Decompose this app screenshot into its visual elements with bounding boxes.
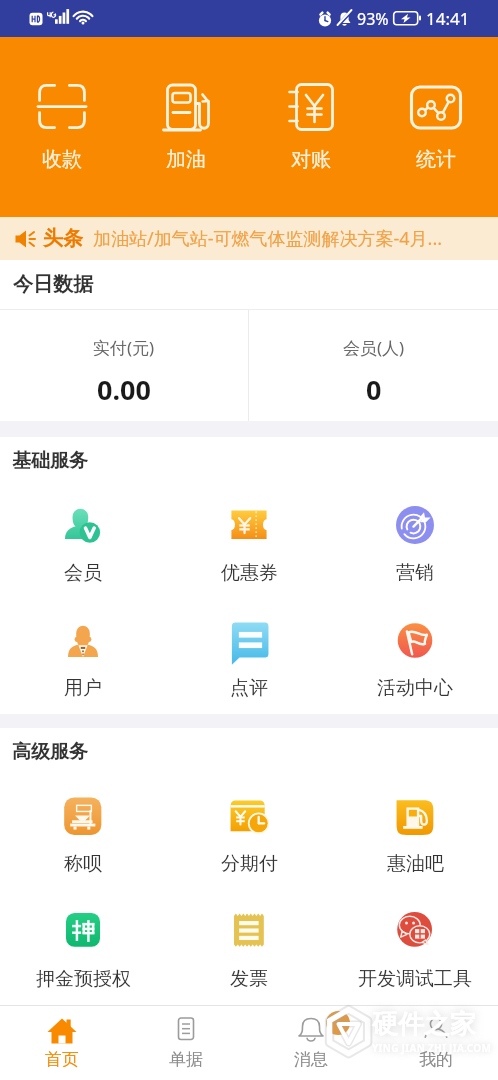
button[interactable]: 惠油吧	[332, 764, 498, 879]
staticText: 硬件之家	[372, 1008, 476, 1041]
staticText: 统计	[416, 147, 456, 172]
staticText: 消息	[294, 1049, 328, 1070]
staticText: 14:41	[426, 7, 470, 30]
button[interactable]: 首页	[0, 1006, 124, 1080]
staticText: 用户	[64, 676, 102, 700]
button[interactable]: 押金预授权	[0, 879, 166, 1005]
staticText: 开发调试工具	[358, 967, 472, 991]
staticText: 今日数据	[13, 272, 93, 297]
staticText: 我的	[419, 1049, 453, 1070]
staticText: 优惠券	[221, 561, 278, 585]
staticText: YING JIAN ZHI JIA.COM	[372, 1041, 492, 1055]
staticText: 称呗	[64, 852, 102, 876]
staticText: 对账	[291, 147, 331, 172]
staticText: 头条	[43, 226, 83, 251]
staticText: 单据	[169, 1049, 203, 1070]
staticText: 发票	[230, 967, 268, 991]
button[interactable]: 称呗	[0, 764, 166, 879]
staticText: 活动中心	[377, 676, 453, 700]
button[interactable]: 会员	[0, 473, 166, 588]
staticText: 93%	[357, 8, 389, 30]
staticText: 分期付	[221, 852, 278, 876]
staticText: 首页	[45, 1049, 79, 1070]
staticText: 惠油吧	[387, 852, 444, 876]
staticText: 会员(人)	[343, 336, 405, 359]
button[interactable]: 优惠券	[166, 473, 332, 588]
staticText: 营销	[396, 561, 434, 585]
staticText: 押金预授权	[36, 967, 131, 991]
staticText: 0.00	[97, 371, 151, 408]
button[interactable]: 开发调试工具	[332, 879, 498, 1005]
button[interactable]: 点评	[166, 588, 332, 714]
staticText: 0	[366, 371, 382, 408]
staticText: 基础服务	[12, 449, 88, 473]
button[interactable]: 统计	[373, 37, 498, 217]
button[interactable]: 用户	[0, 588, 166, 714]
button[interactable]: 营销	[332, 473, 498, 588]
staticText: 加油	[166, 147, 206, 172]
button[interactable]: 单据	[124, 1006, 248, 1080]
button[interactable]: 分期付	[166, 764, 332, 879]
staticText: 点评	[230, 676, 268, 700]
button[interactable]: 对账	[248, 37, 373, 217]
staticText: 加油站/加气站-可燃气体监测解决方案-4月...	[93, 226, 443, 251]
button[interactable]: 加油	[124, 37, 248, 217]
staticText: 收款	[42, 147, 82, 172]
staticText: 实付(元)	[93, 336, 155, 359]
button[interactable]: 消息	[248, 1006, 373, 1080]
staticText: 高级服务	[12, 740, 88, 764]
button[interactable]: 头条	[0, 217, 498, 260]
button[interactable]: 我的	[373, 1006, 498, 1080]
button[interactable]: 发票	[166, 879, 332, 1005]
staticText: 会员	[64, 561, 102, 585]
button[interactable]: 活动中心	[332, 588, 498, 714]
button[interactable]: 收款	[0, 37, 124, 217]
